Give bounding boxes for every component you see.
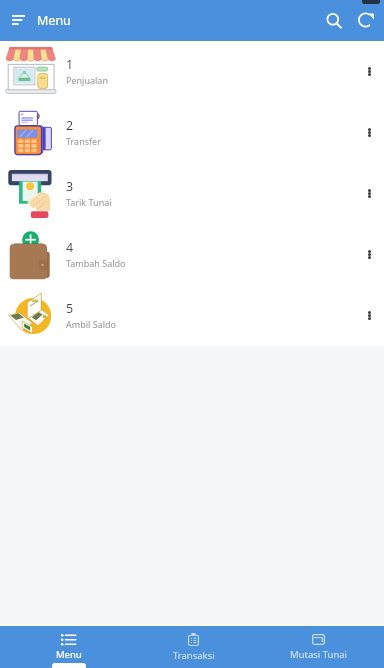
button[interactable]: Transaksi	[131, 626, 256, 668]
button[interactable]: More options	[356, 303, 382, 329]
staticText: Penjualan	[66, 74, 108, 86]
button[interactable]: 1	[0, 41, 384, 102]
button[interactable]: More options	[356, 181, 382, 207]
staticText: 5	[66, 300, 74, 317]
staticText: 4	[66, 239, 74, 256]
button[interactable]: Refresh	[350, 5, 382, 37]
staticText: Mutasi Tunai	[290, 648, 348, 661]
button[interactable]: Menu	[6, 626, 131, 668]
staticText: 2	[66, 117, 74, 134]
button[interactable]: Search	[318, 5, 350, 37]
staticText: 3	[66, 178, 74, 195]
staticText: Menu	[56, 648, 82, 661]
staticText: Transaksi	[173, 649, 215, 662]
button[interactable]: More options	[356, 120, 382, 146]
staticText: Transfer	[66, 135, 101, 147]
button[interactable]: 5	[0, 285, 384, 346]
button[interactable]: 3	[0, 163, 384, 224]
button[interactable]: More options	[356, 59, 382, 85]
button[interactable]: 4	[0, 224, 384, 285]
staticText: Menu	[37, 12, 71, 29]
staticText: Tambah Saldo	[66, 257, 126, 269]
button[interactable]: More options	[356, 242, 382, 268]
staticText: Tarik Tunai	[66, 196, 112, 208]
button[interactable]: 2	[0, 102, 384, 163]
button[interactable]: Open navigation menu	[0, 2, 36, 38]
button[interactable]: Mutasi Tunai	[256, 626, 381, 668]
staticText: 1	[66, 56, 74, 73]
staticText: Ambil Saldo	[66, 318, 116, 330]
